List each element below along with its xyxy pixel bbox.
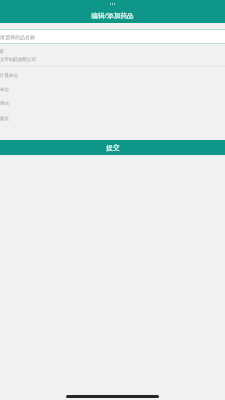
staticText: 北京太平制药有限公司 xyxy=(0,57,36,63)
button[interactable]: 频次 xyxy=(0,116,225,126)
button[interactable]: 用法 xyxy=(0,101,225,111)
button[interactable]: 生产厂家 xyxy=(0,44,225,66)
button[interactable]: 单位 xyxy=(0,87,225,97)
staticText: 请选择药品名称 xyxy=(0,34,35,40)
staticText: 用法 xyxy=(0,101,9,107)
staticText: 计量单位 xyxy=(0,73,18,79)
staticText: 单位 xyxy=(0,87,9,93)
staticText: 频次 xyxy=(0,116,9,122)
staticText: 编辑/添加药品 xyxy=(91,11,134,20)
staticText: 提交 xyxy=(106,143,120,152)
button[interactable]: 请选择药品名称 xyxy=(0,30,225,43)
button[interactable]: 提交 xyxy=(0,140,225,155)
button[interactable]: 计量单位 xyxy=(0,73,225,83)
staticText: 生产厂家 xyxy=(0,49,4,55)
